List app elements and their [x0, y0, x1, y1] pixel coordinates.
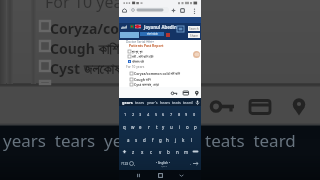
button[interactable]: g [157, 135, 164, 144]
button[interactable]: b [165, 148, 172, 156]
button[interactable]: teats [172, 100, 181, 105]
button[interactable]: Shift [121, 148, 128, 155]
button[interactable]: 2 [130, 110, 137, 119]
staticText: 9 [185, 112, 188, 117]
staticText: year's [147, 100, 158, 105]
button[interactable]: Hide keyboard [179, 173, 184, 178]
button[interactable]: tears [135, 100, 145, 105]
button[interactable]: a [125, 135, 132, 144]
button[interactable]: s [133, 135, 140, 144]
button[interactable]: d [141, 135, 148, 144]
button[interactable]: Enter [192, 160, 199, 167]
button[interactable]: Recents [136, 173, 141, 178]
staticText: Share [190, 34, 199, 38]
button[interactable]: বমিভাব বমি [128, 59, 144, 64]
button[interactable] [129, 7, 169, 13]
button[interactable]: 3 [137, 110, 144, 119]
button[interactable]: 7 [168, 110, 175, 119]
button[interactable]: m [183, 148, 190, 156]
staticText: j [175, 137, 177, 143]
button[interactable]: Cyst জলকোষ, ফোড়া [130, 82, 159, 87]
button[interactable]: More options [192, 8, 197, 13]
button[interactable]: gears [122, 100, 133, 105]
button[interactable]: Home [122, 8, 127, 13]
button[interactable]: i [176, 122, 183, 131]
button[interactable]: জ্বর জ্বর, জ্বর [128, 49, 143, 54]
staticText: Quick [161, 165, 167, 168]
button[interactable]: l [188, 135, 195, 144]
button[interactable]: r [145, 122, 152, 131]
button[interactable]: k [180, 135, 187, 144]
button[interactable]: y [160, 122, 167, 131]
staticText: k [182, 137, 185, 143]
button[interactable]: t [153, 122, 160, 131]
staticText: 2 [132, 112, 135, 117]
button[interactable]: Tabs [180, 8, 185, 13]
button[interactable]: Search [188, 26, 200, 31]
staticText: , [134, 161, 136, 166]
button[interactable]: o [184, 122, 191, 131]
button[interactable]: n [174, 148, 181, 156]
button[interactable]: teard [183, 100, 193, 105]
button[interactable]: w [129, 122, 136, 131]
staticText: m [184, 149, 189, 155]
button[interactable]: e [137, 122, 144, 131]
button[interactable]: j [172, 135, 179, 144]
staticText: • English • [156, 161, 171, 165]
staticText: h [166, 137, 169, 143]
button[interactable]: hears [160, 100, 171, 105]
button[interactable]: 6 [160, 110, 167, 119]
button[interactable]: z [130, 148, 137, 156]
button[interactable]: Cough কাশি [130, 77, 151, 82]
button[interactable]: v [157, 148, 164, 156]
staticText: l [191, 137, 193, 143]
staticText: 0 [193, 112, 196, 117]
button[interactable]: বাংলা ডাক্তার [140, 32, 164, 36]
staticText: 5 [155, 112, 158, 117]
staticText: b [167, 149, 170, 155]
button[interactable]: Voice input [195, 100, 200, 105]
button[interactable]: Coryza/common cold সর্দি কাশি [130, 71, 181, 76]
staticText: teard [183, 100, 193, 105]
button[interactable]: 5 [153, 110, 160, 119]
button[interactable]: Share [188, 33, 200, 38]
staticText: teats [172, 100, 181, 105]
button[interactable]: year's [147, 100, 158, 105]
button[interactable] [177, 26, 184, 32]
staticText: years tears ye [3, 129, 123, 152]
button[interactable]: c [148, 148, 155, 156]
button[interactable]: সর্দি - সর্দি কাশি হাঁচি [128, 54, 154, 59]
staticText: 1 [124, 112, 127, 117]
button[interactable]: q [121, 122, 128, 131]
button[interactable]: 8 [176, 110, 183, 119]
staticText: o [186, 124, 189, 130]
button[interactable]: 4 [145, 110, 152, 119]
button[interactable]: h [164, 135, 171, 144]
button[interactable]: 0 [191, 110, 198, 119]
button[interactable]: ?123 [121, 161, 129, 166]
staticText: 7 [170, 112, 173, 117]
button[interactable]: f [149, 135, 156, 144]
staticText: n [176, 149, 179, 155]
staticText: Search [189, 27, 199, 31]
button[interactable]: x [139, 148, 146, 156]
staticText: Doctor Serial সিরিয়াল [126, 40, 154, 44]
staticText: f [152, 137, 154, 143]
button[interactable]: 1 [122, 110, 129, 119]
button[interactable]: p [192, 122, 199, 131]
button[interactable]: 9 [183, 110, 190, 119]
button[interactable]: • English • [136, 160, 190, 168]
staticText: e [139, 124, 142, 130]
staticText: বমিভাব বমি [132, 59, 144, 64]
button[interactable]: Home [158, 173, 163, 178]
staticText: বাংলা ডাক্তার [147, 32, 158, 36]
button[interactable]: u [168, 122, 175, 131]
button[interactable]: New tab [171, 8, 176, 13]
button[interactable]: Backspace [192, 148, 199, 155]
staticText: gears [122, 100, 133, 105]
staticText: hears [160, 100, 171, 105]
button[interactable]: Emoji [129, 161, 134, 166]
staticText: Cyst জলকোষ, [50, 59, 125, 78]
